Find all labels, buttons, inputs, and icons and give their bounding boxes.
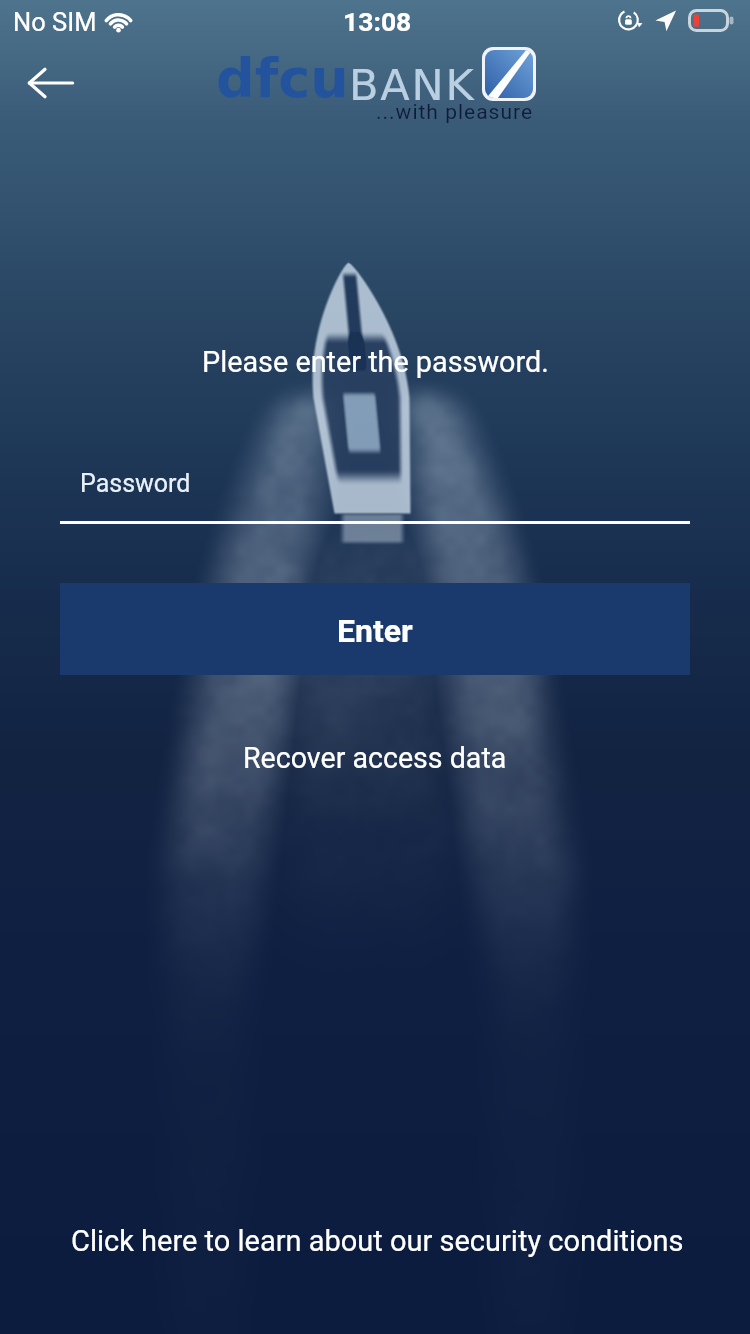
button[interactable]: Recover access data	[0, 731, 750, 785]
button[interactable]: Click here to learn about our security c…	[0, 1214, 750, 1268]
button[interactable]: Enter	[60, 583, 690, 675]
staticText: 13:08	[343, 6, 412, 37]
staticText: BANK	[349, 60, 476, 110]
staticText: Password	[80, 469, 191, 498]
button[interactable]: Back	[16, 48, 86, 118]
staticText: Click here to learn about our security c…	[71, 1224, 684, 1258]
staticText: dfcu	[216, 47, 349, 110]
staticText: No SIM	[13, 7, 97, 37]
staticText: Recover access data	[243, 741, 507, 775]
staticText: ...with pleasure	[376, 100, 534, 125]
staticText: Please enter the password.	[202, 345, 549, 379]
staticText: Enter	[337, 612, 413, 650]
